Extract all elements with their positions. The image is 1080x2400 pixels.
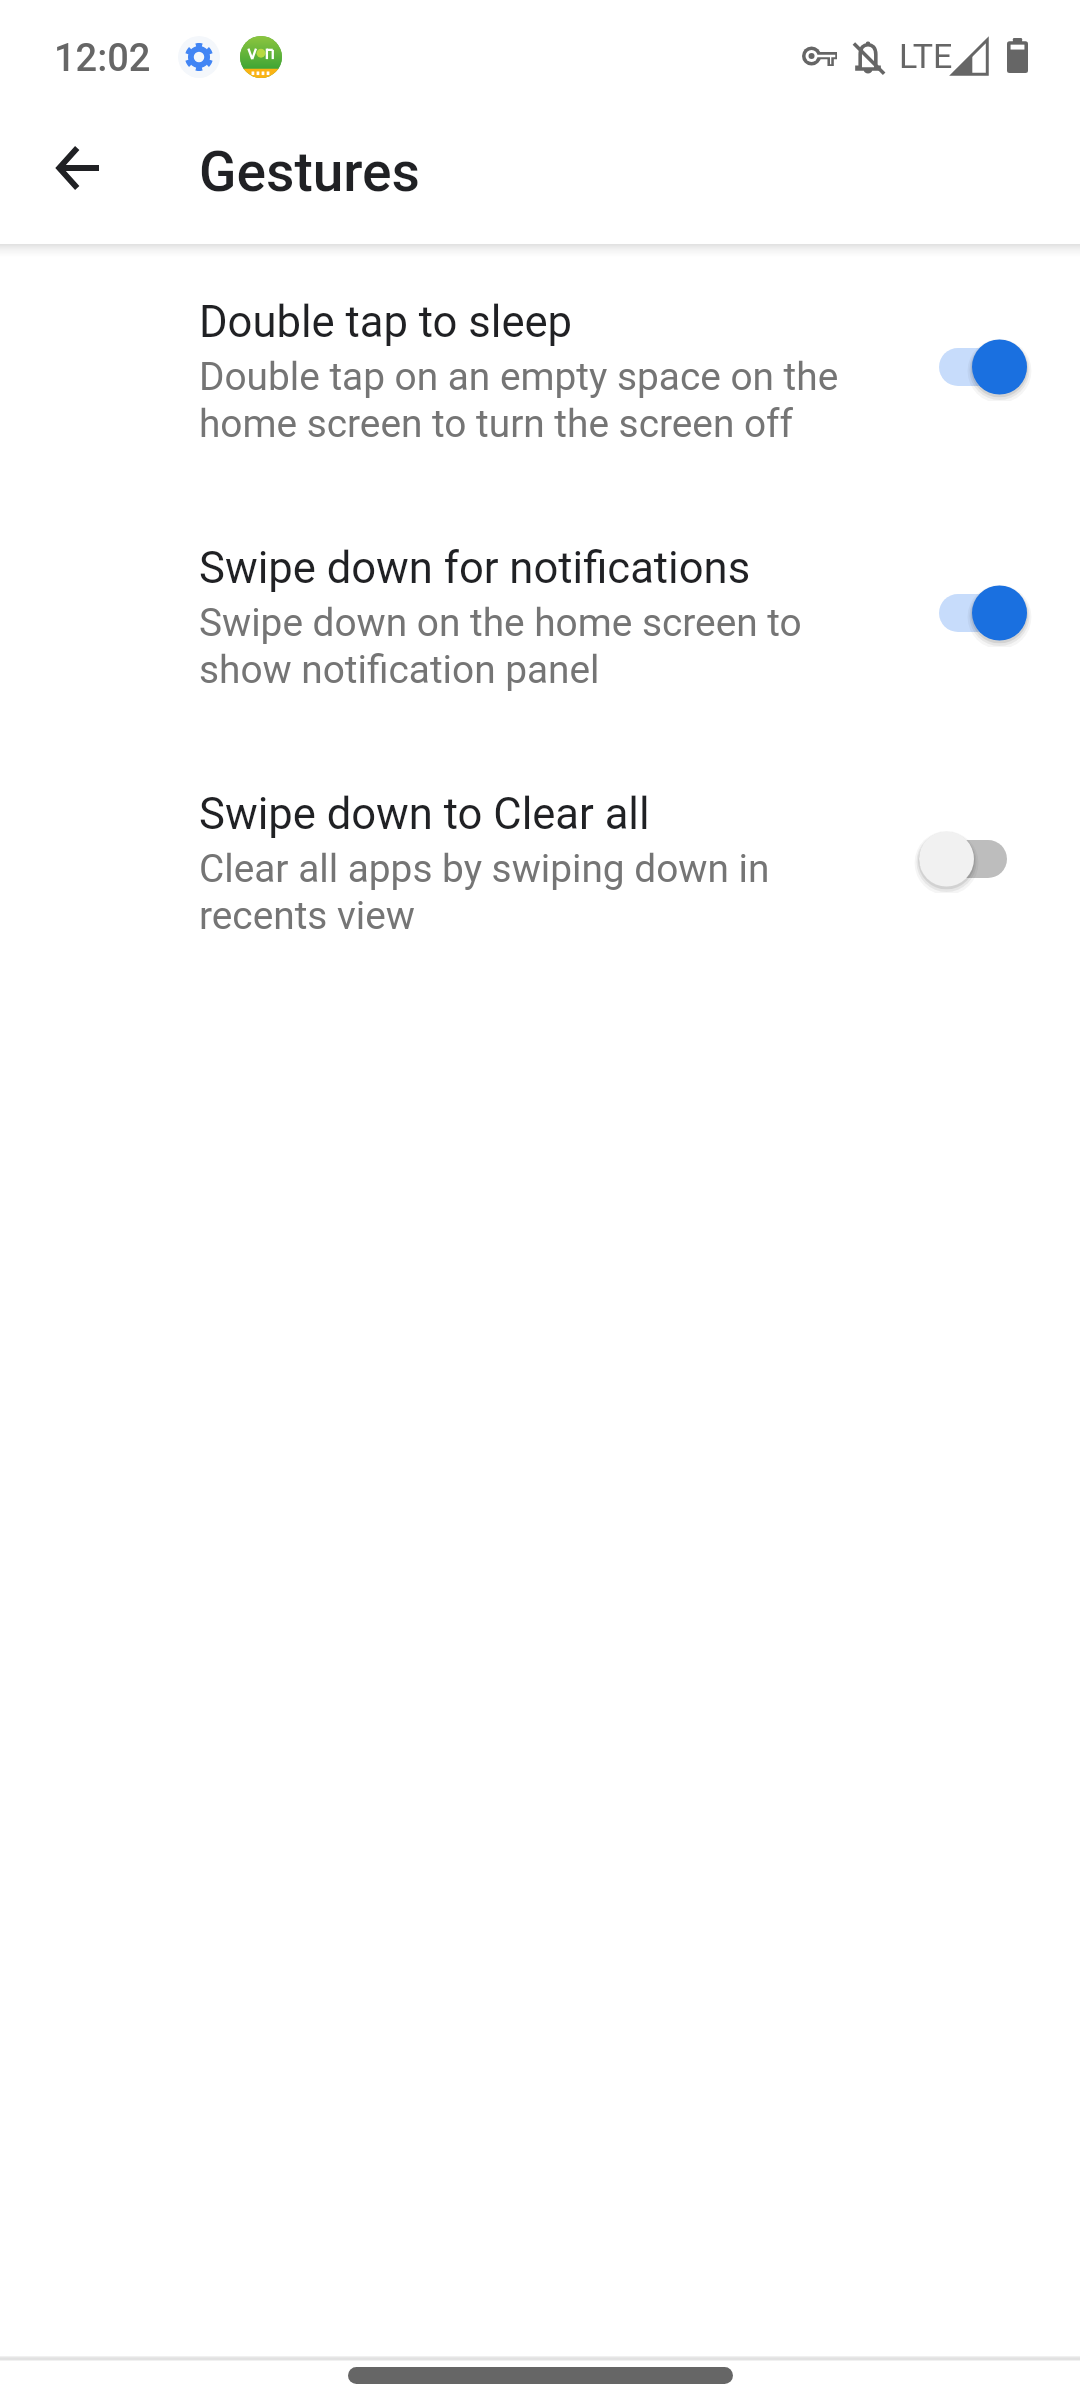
button[interactable]: Swipe down to Clear all [0,783,1080,963]
button[interactable]: Disabled [899,825,1027,893]
staticText: Double tap on an empty space on the home… [199,354,839,447]
staticText: LTE [899,36,953,76]
button[interactable]: Enabled [919,333,1047,401]
staticText: Clear all apps by swiping down in recent… [199,846,770,939]
button[interactable]: Home [348,2367,733,2384]
button[interactable]: Double tap to sleep [0,291,1080,471]
staticText: Swipe down on the home screen to show no… [199,600,802,693]
button[interactable]: Enabled [919,579,1047,647]
button[interactable]: Swipe down for notifications [0,537,1080,717]
staticText: Swipe down for notifications [199,543,751,594]
staticText: Double tap to sleep [199,297,573,348]
staticText: 12:02 [54,36,151,81]
button[interactable]: Navigate up [29,120,125,216]
staticText: Swipe down to Clear all [199,789,650,840]
staticText: Gestures [199,140,421,204]
